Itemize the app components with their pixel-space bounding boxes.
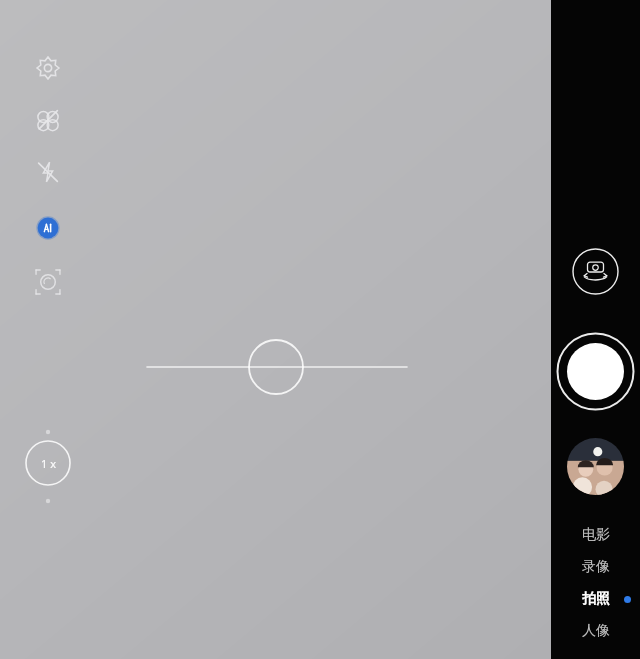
staticText: 录像 — [582, 558, 610, 576]
staticText: 电影 — [582, 526, 610, 544]
staticText: 人像 — [582, 622, 610, 640]
staticText: 拍照 — [582, 590, 610, 608]
staticText: 1 x — [41, 456, 56, 471]
button[interactable]: AI scene detection — [28, 208, 68, 248]
button[interactable]: Settings — [28, 48, 68, 88]
button[interactable]: Night mode — [28, 262, 68, 302]
button[interactable]: 人像 — [551, 620, 640, 642]
button[interactable]: Switch camera — [572, 248, 619, 295]
button[interactable]: Filters off — [28, 100, 68, 140]
button[interactable]: 录像 — [551, 556, 640, 578]
button[interactable]: Gallery — [567, 438, 624, 495]
button[interactable]: Zoom 1x — [24, 439, 72, 487]
button[interactable]: Shutter — [556, 332, 635, 411]
button[interactable]: Flash off — [28, 152, 68, 192]
button[interactable]: 拍照 — [551, 588, 640, 610]
button[interactable]: 电影 — [551, 524, 640, 546]
